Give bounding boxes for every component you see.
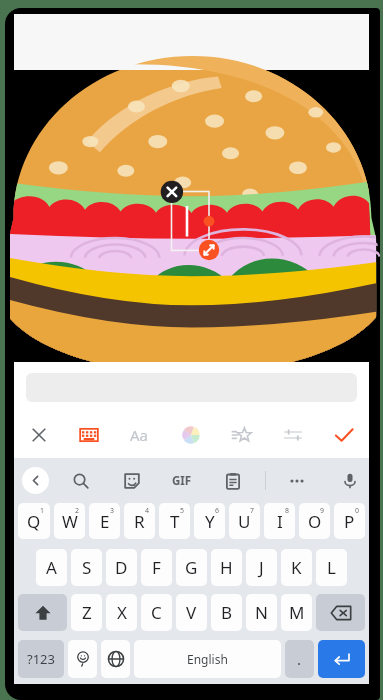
staticText: 4: [145, 506, 150, 516]
button[interactable]: ?123: [18, 640, 64, 678]
staticText: V: [186, 601, 197, 624]
staticText: 0: [355, 506, 360, 516]
staticText: 9: [320, 506, 325, 516]
button[interactable]: Backspace: [316, 594, 365, 631]
button[interactable]: X: [106, 594, 137, 631]
button[interactable]: G: [176, 549, 207, 586]
staticText: U: [238, 510, 251, 533]
button[interactable]: K: [281, 549, 312, 586]
button[interactable]: E: [89, 503, 120, 539]
button[interactable]: S: [71, 549, 102, 586]
button[interactable]: J: [246, 549, 277, 586]
staticText: S: [82, 556, 92, 579]
button[interactable]: .: [285, 640, 314, 678]
staticText: 1: [40, 506, 45, 516]
button[interactable]: Keyboard: [64, 416, 114, 454]
button[interactable]: Y: [194, 503, 225, 539]
button[interactable]: Adjust: [267, 416, 318, 454]
button[interactable]: C: [141, 594, 172, 631]
button[interactable]: Voice input: [338, 469, 362, 493]
staticText: ?123: [27, 650, 55, 668]
button[interactable]: V: [176, 594, 207, 631]
button[interactable]: Search: [69, 469, 93, 493]
button[interactable]: Done: [318, 416, 369, 454]
staticText: K: [291, 556, 302, 579]
staticText: L: [327, 556, 336, 579]
button[interactable]: T: [159, 503, 190, 539]
staticText: C: [151, 601, 162, 624]
button[interactable]: English: [134, 640, 281, 678]
staticText: Aa: [130, 425, 149, 445]
staticText: P: [344, 510, 355, 533]
button[interactable]: Effects: [216, 416, 267, 454]
button[interactable]: Enter: [318, 640, 365, 678]
button[interactable]: Shift: [18, 594, 67, 631]
staticText: G: [185, 556, 198, 579]
staticText: D: [115, 556, 128, 579]
staticText: R: [134, 510, 145, 533]
button[interactable]: Clipboard: [221, 469, 245, 493]
button[interactable]: B: [211, 594, 242, 631]
button[interactable]: Stickers: [120, 469, 144, 493]
button[interactable]: A: [36, 549, 67, 586]
button[interactable]: Close: [14, 416, 64, 454]
button[interactable]: M: [281, 594, 312, 631]
staticText: 5: [180, 506, 185, 516]
button[interactable]: I: [264, 503, 295, 539]
staticText: .: [297, 649, 302, 669]
staticText: 2: [75, 506, 80, 516]
button[interactable]: GIF: [170, 469, 194, 493]
button[interactable]: R: [124, 503, 155, 539]
staticText: N: [255, 601, 268, 624]
button[interactable]: Language: [101, 640, 130, 678]
button[interactable]: Back: [22, 467, 49, 494]
staticText: A: [46, 556, 57, 579]
staticText: 6: [215, 506, 220, 516]
staticText: GIF: [172, 473, 192, 489]
button[interactable]: W: [54, 503, 85, 539]
button[interactable]: D: [106, 549, 137, 586]
staticText: English: [187, 651, 228, 667]
staticText: H: [220, 556, 233, 579]
staticText: J: [259, 556, 264, 579]
staticText: X: [117, 601, 127, 624]
staticText: Q: [27, 510, 41, 533]
button[interactable]: N: [246, 594, 277, 631]
staticText: I: [277, 510, 283, 533]
staticText: F: [152, 556, 161, 579]
staticText: 8: [285, 506, 290, 516]
button[interactable]: Emoji: [68, 640, 97, 678]
button[interactable]: H: [211, 549, 242, 586]
button[interactable]: Font: [114, 416, 165, 454]
button[interactable]: More: [285, 469, 309, 493]
button[interactable]: O: [299, 503, 330, 539]
staticText: W: [62, 510, 78, 533]
button[interactable]: Z: [71, 594, 102, 631]
button[interactable]: P: [334, 503, 365, 539]
staticText: Y: [205, 510, 215, 533]
button[interactable]: F: [141, 549, 172, 586]
staticText: O: [308, 510, 322, 533]
staticText: T: [170, 510, 180, 533]
staticText: M: [289, 601, 305, 624]
staticText: B: [221, 601, 233, 624]
button[interactable]: U: [229, 503, 260, 539]
staticText: E: [100, 510, 110, 533]
staticText: 3: [110, 506, 115, 516]
button[interactable]: Color: [165, 416, 216, 454]
button[interactable]: Q: [18, 503, 50, 539]
staticText: Z: [82, 601, 92, 624]
button[interactable]: L: [316, 549, 347, 586]
staticText: 7: [250, 506, 255, 516]
